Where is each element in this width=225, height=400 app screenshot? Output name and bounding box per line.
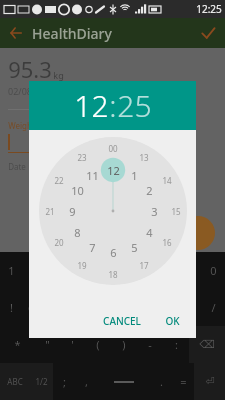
staticText: ' — [71, 337, 74, 352]
button[interactable]: + — [179, 289, 202, 326]
button[interactable]: 3 — [44, 252, 66, 289]
staticText: HealthDiary — [32, 24, 112, 43]
staticText: 8 — [74, 225, 81, 240]
button[interactable]: Add entry — [181, 216, 215, 250]
button[interactable]: Back — [5, 22, 27, 44]
button[interactable]: 2 — [139, 180, 159, 200]
button[interactable]: CANCEL — [95, 309, 149, 333]
button[interactable]: 10 — [67, 180, 87, 200]
staticText: 14 — [162, 175, 172, 186]
button[interactable]: / — [202, 289, 225, 326]
button[interactable]: 23 — [72, 147, 92, 167]
button[interactable]: 9 — [179, 252, 202, 289]
button[interactable]: 25 — [117, 85, 152, 126]
button[interactable]: ' — [60, 326, 85, 363]
button[interactable]: % — [88, 289, 110, 326]
button[interactable]: 8 — [156, 252, 179, 289]
button[interactable]: 00 — [103, 138, 123, 158]
button[interactable]: 8 — [67, 222, 87, 242]
button[interactable]: ) — [111, 326, 137, 363]
button[interactable]: 12 — [74, 85, 109, 126]
staticText: 0 — [210, 263, 217, 278]
staticText: : — [109, 85, 117, 126]
staticText: 7 — [89, 240, 96, 255]
button[interactable]: 4 — [139, 222, 159, 242]
button[interactable]: Backspace — [189, 326, 225, 363]
button[interactable]: 7 — [82, 237, 102, 257]
button[interactable]: 9 — [62, 201, 82, 221]
button[interactable]: " — [35, 326, 60, 363]
button[interactable]: 18 — [103, 264, 123, 284]
button[interactable]: Save — [197, 22, 219, 44]
staticText: 00 — [108, 143, 118, 154]
button[interactable]: Enter — [194, 363, 225, 400]
button[interactable]: 22 — [49, 170, 69, 190]
button[interactable]: = — [172, 363, 194, 400]
button[interactable]: 15 — [166, 201, 186, 221]
button[interactable]: 3 — [144, 201, 164, 221]
staticText: 4 — [146, 225, 153, 240]
staticText: 16 — [162, 237, 172, 248]
button[interactable]: 11 — [82, 165, 102, 185]
staticText: 02/08 — [8, 85, 32, 97]
button[interactable]: 5 — [124, 237, 144, 257]
staticText: 3 — [151, 204, 158, 219]
button[interactable]: @ — [22, 289, 44, 326]
button[interactable]: 5 — [88, 252, 110, 289]
staticText: 18 — [108, 269, 118, 280]
button[interactable]: 4 — [66, 252, 88, 289]
button[interactable]: ! — [0, 289, 22, 326]
staticText: OK — [165, 314, 180, 328]
staticText: 12 — [107, 163, 120, 178]
button[interactable]: Space — [97, 363, 150, 400]
staticText: ; — [63, 374, 66, 389]
staticText: - — [148, 337, 152, 352]
button[interactable]: & — [110, 289, 133, 326]
button[interactable]: : — [163, 326, 189, 363]
button[interactable]: * — [133, 289, 156, 326]
button[interactable]: 6 — [110, 252, 133, 289]
staticText: 19 — [77, 260, 87, 271]
button[interactable]: 13 — [134, 147, 154, 167]
button[interactable]: 17 — [134, 255, 154, 275]
staticText: @ — [28, 300, 38, 315]
staticText: 10 — [71, 183, 84, 198]
button[interactable]: 12 — [103, 160, 123, 180]
staticText: ! — [10, 300, 13, 315]
button[interactable]: ; — [53, 363, 75, 400]
button[interactable]: 1 — [0, 252, 22, 289]
staticText: ( — [96, 337, 100, 352]
button[interactable]: 21 — [40, 201, 60, 221]
button[interactable]: - — [137, 326, 163, 363]
button[interactable]: ABC — [0, 363, 29, 400]
button[interactable]: 14 — [157, 170, 177, 190]
button[interactable]: 19 — [72, 255, 92, 275]
button[interactable]: ( — [85, 326, 111, 363]
button[interactable]: 7 — [133, 252, 156, 289]
button[interactable]: 1 — [124, 165, 144, 185]
staticText: 21 — [45, 206, 55, 217]
button[interactable]: * — [0, 326, 35, 363]
button[interactable]: 1/2 — [29, 363, 53, 400]
staticText: 22 — [54, 175, 64, 186]
button[interactable]: 2 — [22, 252, 44, 289]
button[interactable]: 0 — [202, 252, 225, 289]
button[interactable]: 16 — [157, 232, 177, 252]
staticText: 1/2 — [35, 376, 48, 387]
button[interactable]: 20 — [49, 232, 69, 252]
staticText: . — [160, 374, 163, 389]
button[interactable]: OK — [157, 309, 188, 333]
button[interactable]: 6 — [103, 242, 123, 262]
button[interactable]: - — [156, 289, 179, 326]
staticText: Weight — [8, 120, 35, 131]
